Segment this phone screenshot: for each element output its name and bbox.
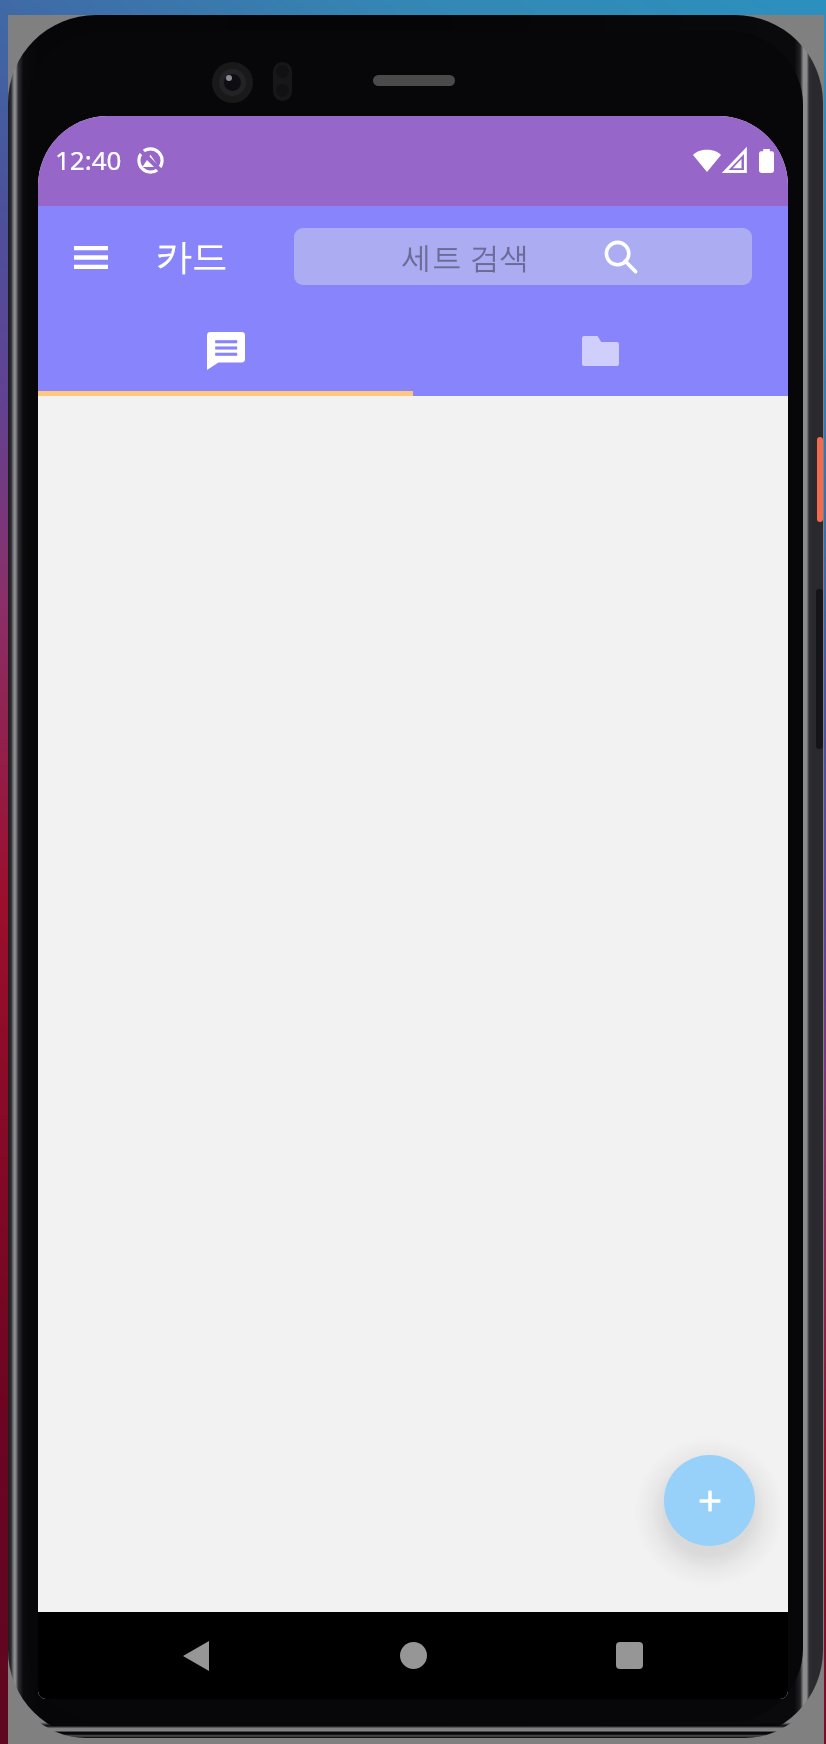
button[interactable]: 세트 검색	[294, 228, 752, 285]
staticText: 세트 검색	[402, 236, 530, 277]
button[interactable]: Menu	[56, 222, 126, 292]
button[interactable]: Home	[375, 1612, 451, 1699]
button[interactable]: Folders	[413, 307, 788, 391]
button[interactable]: Messages	[38, 307, 413, 391]
button[interactable]: Back	[158, 1612, 234, 1699]
button[interactable]: Add	[664, 1455, 755, 1546]
button[interactable]: Recents	[591, 1612, 667, 1699]
staticText: 카드	[156, 234, 228, 279]
staticText: 12:40	[55, 142, 122, 177]
